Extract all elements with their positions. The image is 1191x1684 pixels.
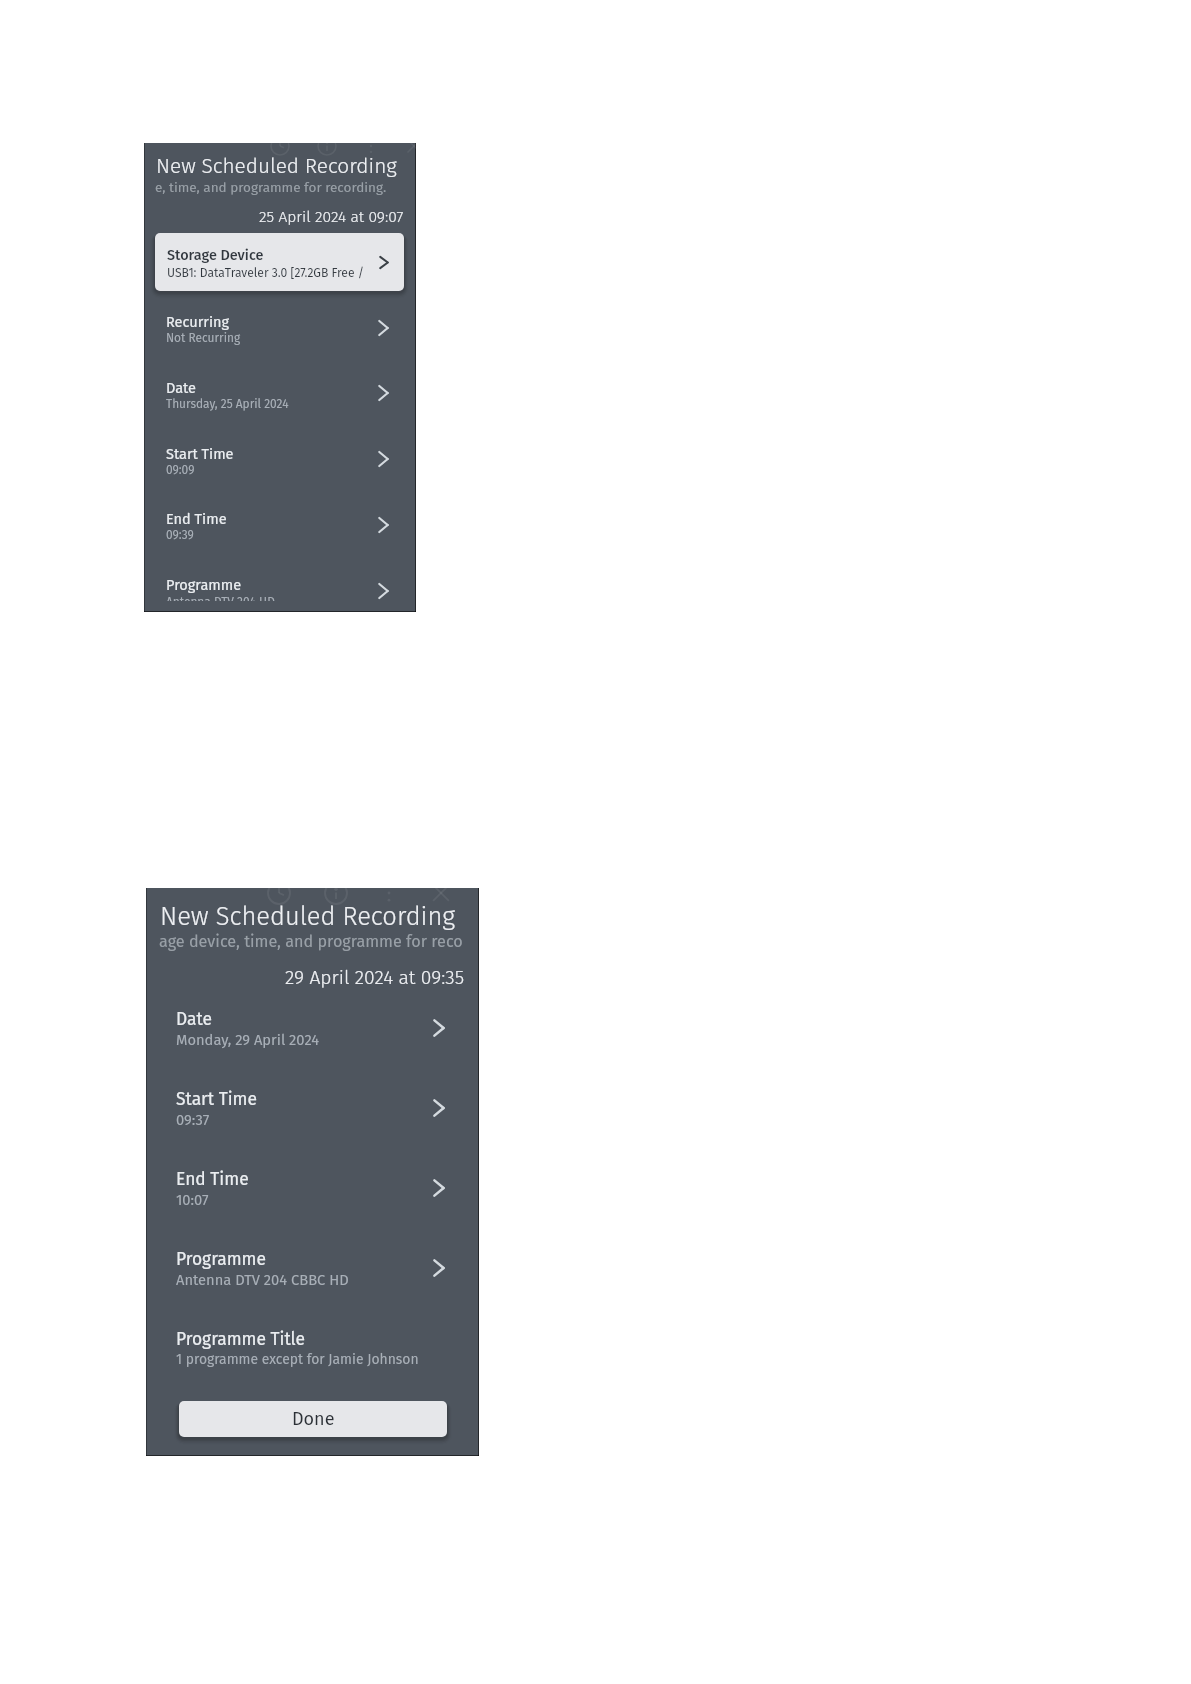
- staticText: age device, time, and programme for reco: [159, 932, 463, 951]
- staticText: Date: [166, 379, 197, 396]
- staticText: 09:39: [166, 528, 194, 542]
- button[interactable]: Scheduled recordings: [323, 880, 349, 906]
- staticText: USB1: DataTraveler 3.0 [27.2GB Free /: [167, 266, 365, 281]
- staticText: Not Recurring: [166, 331, 241, 345]
- staticText: 29 April 2024 at 09:35: [285, 966, 465, 989]
- button[interactable]: Close: [403, 135, 425, 157]
- button[interactable]: Done: [179, 1401, 447, 1437]
- staticText: 10:07: [176, 1191, 209, 1209]
- staticText: Antenna DTV 204 HD: [166, 595, 275, 601]
- button[interactable]: More options: [376, 880, 402, 906]
- staticText: Start Time: [176, 1089, 257, 1110]
- staticText: 09:37: [176, 1111, 210, 1129]
- staticText: New Scheduled Recording: [160, 901, 456, 932]
- staticText: Start Time: [166, 445, 234, 462]
- button[interactable]: End Time: [160, 1158, 466, 1234]
- staticText: New Scheduled Recording: [156, 154, 397, 179]
- button[interactable]: End Time: [156, 498, 404, 560]
- button[interactable]: Date: [160, 998, 466, 1074]
- staticText: Done: [292, 1408, 335, 1430]
- staticText: 1 programme except for Jamie Johnson: [176, 1351, 419, 1368]
- button[interactable]: Programme Title: [160, 1318, 466, 1380]
- staticText: 09:09: [166, 463, 195, 477]
- button[interactable]: Start Time: [156, 432, 404, 494]
- button[interactable]: Recording history: [266, 880, 292, 906]
- button[interactable]: Start Time: [160, 1078, 466, 1154]
- button[interactable]: Scheduled recordings: [316, 135, 338, 157]
- button[interactable]: More options: [360, 135, 382, 157]
- staticText: Date: [176, 1009, 212, 1030]
- button[interactable]: Recurring: [156, 301, 404, 363]
- staticText: e, time, and programme for recording.: [155, 179, 387, 195]
- staticText: Programme: [176, 1249, 266, 1270]
- staticText: 25 April 2024 at 09:07: [259, 207, 404, 226]
- staticText: End Time: [166, 510, 227, 527]
- staticText: Thursday, 25 April 2024: [166, 397, 289, 411]
- button[interactable]: Close: [428, 880, 454, 906]
- staticText: Programme: [166, 576, 242, 593]
- button[interactable]: Programme: [156, 564, 404, 601]
- staticText: Antenna DTV 204 CBBC HD: [176, 1271, 349, 1289]
- button[interactable]: Recording history: [269, 135, 291, 157]
- staticText: End Time: [176, 1169, 249, 1190]
- staticText: Recurring: [166, 313, 230, 330]
- button[interactable]: Date: [156, 366, 404, 428]
- staticText: Monday, 29 April 2024: [176, 1031, 320, 1049]
- button[interactable]: Storage Device: [155, 233, 404, 291]
- staticText: Programme Title: [176, 1329, 306, 1350]
- button[interactable]: Programme: [160, 1238, 466, 1314]
- staticText: Storage Device: [167, 247, 264, 264]
